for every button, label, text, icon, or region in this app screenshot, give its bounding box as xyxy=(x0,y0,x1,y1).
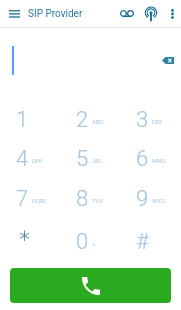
button[interactable]: 5 xyxy=(61,137,121,177)
staticText: 1 xyxy=(16,107,29,129)
staticText: MNO xyxy=(152,157,166,164)
staticText: + xyxy=(92,240,96,247)
staticText: 2 xyxy=(76,107,89,129)
staticText: SIP Provider xyxy=(28,8,83,20)
staticText: 7 xyxy=(16,186,29,208)
staticText: 9 xyxy=(136,186,149,208)
button[interactable]: 1 xyxy=(0,98,61,138)
button[interactable]: 8 xyxy=(61,177,121,217)
staticText: 6 xyxy=(136,146,149,168)
button[interactable]: More options xyxy=(163,1,181,26)
button[interactable]: 0 xyxy=(61,220,121,260)
staticText: DEF xyxy=(152,118,163,125)
button[interactable]: Call xyxy=(10,268,171,303)
staticText: ABC xyxy=(92,118,104,125)
staticText: GHI xyxy=(32,157,42,164)
staticText: # xyxy=(136,229,149,251)
button[interactable]: 3 xyxy=(121,98,181,138)
staticText: JKL xyxy=(92,157,103,164)
button[interactable]: 4 xyxy=(0,137,61,177)
button[interactable]: 2 xyxy=(61,98,121,138)
button[interactable]: # xyxy=(121,220,181,260)
staticText: 4 xyxy=(16,146,29,168)
button[interactable]: 9 xyxy=(121,177,181,217)
button[interactable]: Wi-Fi calling xyxy=(138,1,163,26)
button[interactable]: Backspace xyxy=(156,48,180,72)
staticText: 5 xyxy=(76,146,89,168)
staticText: 0 xyxy=(76,229,89,251)
staticText: WXYZ xyxy=(152,197,166,204)
button[interactable]: Open navigation drawer xyxy=(2,2,26,25)
staticText: PQRS xyxy=(32,197,46,204)
staticText: 3 xyxy=(136,107,149,129)
staticText: 8 xyxy=(76,186,89,208)
button[interactable]: 6 xyxy=(121,137,181,177)
button[interactable] xyxy=(0,220,61,260)
button[interactable]: Voicemail xyxy=(113,1,140,26)
button[interactable]: 7 xyxy=(0,177,61,217)
staticText: TUV xyxy=(92,197,104,204)
